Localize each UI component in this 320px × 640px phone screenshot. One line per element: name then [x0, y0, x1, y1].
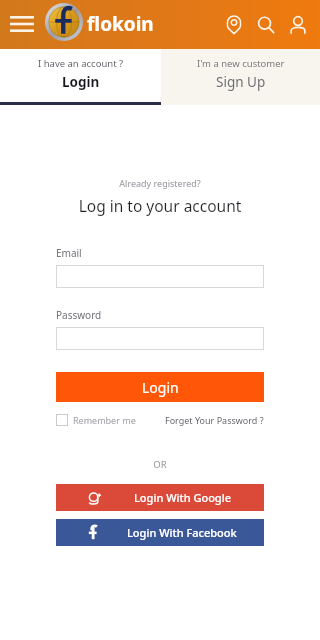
button[interactable] [56, 327, 264, 350]
button[interactable]: Login With Facebook [56, 519, 264, 546]
staticText: Sign Up [216, 73, 266, 91]
staticText: OR [56, 458, 264, 471]
button[interactable]: Account [282, 9, 314, 41]
button[interactable]: I have an account ? [0, 49, 161, 105]
button[interactable]: Remember me [56, 414, 136, 426]
staticText: Remember me [73, 414, 136, 426]
staticText: Forget Your Password ? [165, 414, 264, 426]
button[interactable]: Login With Google [56, 484, 264, 511]
staticText: Login [142, 378, 179, 397]
button[interactable]: Forget Your Password ? [165, 414, 264, 426]
staticText: Already registered? [0, 177, 320, 189]
button[interactable]: I'm a new customer [161, 49, 320, 105]
staticText: Login With Facebook [127, 525, 237, 540]
button[interactable]: Menu [4, 10, 40, 38]
staticText: Login [62, 73, 100, 91]
staticText: Log in to your account [0, 195, 320, 216]
staticText: Password [56, 308, 102, 322]
staticText: I have an account ? [38, 57, 124, 70]
staticText: I'm a new customer [197, 57, 285, 70]
button[interactable]: Search [250, 9, 282, 41]
staticText: Login With Google [134, 490, 231, 505]
button[interactable] [56, 265, 264, 288]
staticText: flokoin [87, 11, 154, 37]
button[interactable]: Location [218, 9, 250, 41]
staticText: Email [56, 246, 82, 260]
button[interactable]: Login [56, 372, 264, 402]
